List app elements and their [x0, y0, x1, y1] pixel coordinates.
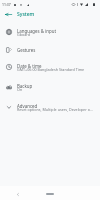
staticText: 11:37	[2, 2, 11, 7]
button[interactable]: Date & time	[0, 57, 100, 77]
staticText: Reset options, Multiple users, Developer…	[17, 107, 93, 112]
staticText: Advanced	[17, 103, 38, 109]
button[interactable]: Back	[3, 9, 14, 20]
staticText: GMT+06:00 Bangladesh Standard Time	[17, 67, 85, 72]
button[interactable]: Back	[15, 192, 20, 197]
staticText: Languages & input	[17, 28, 56, 34]
button[interactable]: Backup	[0, 77, 100, 97]
staticText: System	[17, 11, 35, 18]
button[interactable]: Advanced	[0, 97, 100, 117]
staticText: Gestures	[17, 47, 36, 53]
staticText: Date & time	[17, 63, 42, 69]
staticText: Gboard	[17, 32, 30, 37]
button[interactable]: Languages & input	[0, 22, 100, 42]
staticText: On	[17, 87, 23, 92]
button[interactable]: Gestures	[0, 42, 100, 57]
button[interactable]: Home	[46, 193, 54, 195]
staticText: Backup	[17, 83, 33, 89]
